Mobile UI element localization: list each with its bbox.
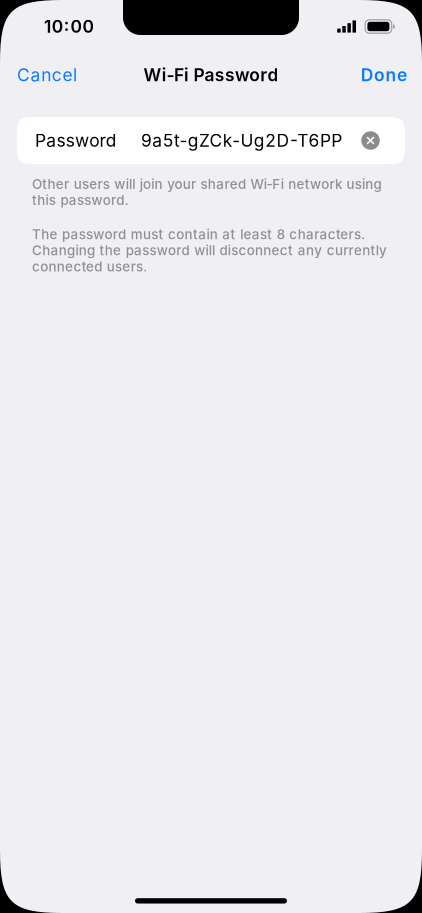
staticText: Password [35, 130, 117, 151]
staticText: The password must contain at least 8 cha… [32, 226, 365, 242]
staticText: Changing the password will disconnect an… [32, 242, 387, 258]
staticText: 10:00 [44, 16, 93, 37]
button[interactable]: Clear text [353, 118, 388, 163]
button[interactable]: Done [355, 55, 413, 94]
button[interactable]: Password [35, 117, 353, 164]
staticText: this password. [32, 192, 129, 208]
staticText: connected users. [32, 258, 147, 275]
staticText: Cancel [17, 64, 77, 85]
staticText: Other users will join your shared Wi‑Fi … [32, 176, 382, 192]
button[interactable]: Cancel [11, 55, 83, 94]
staticText: Done [361, 64, 407, 85]
staticText: Wi‑Fi Password [143, 64, 278, 85]
staticText: 9a5t-gZCk-Ug2D-T6PP [141, 130, 342, 151]
